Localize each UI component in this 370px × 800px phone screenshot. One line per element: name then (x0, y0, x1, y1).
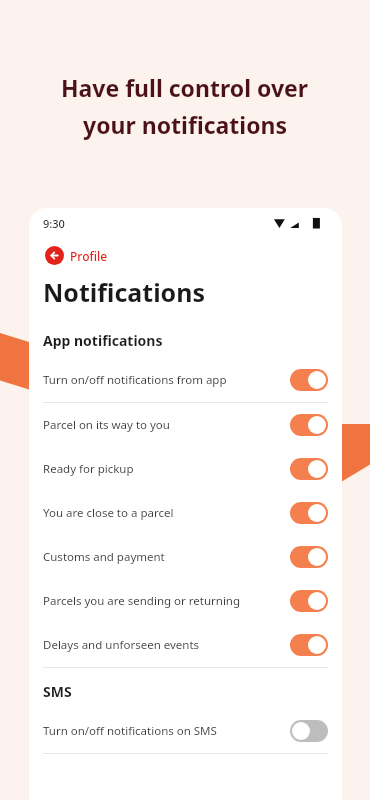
button[interactable]: Delays and unforseen events (29, 623, 342, 667)
staticText: SMS (43, 682, 72, 701)
button[interactable]: On (290, 634, 328, 656)
staticText: Turn on/off notifications on SMS (43, 723, 217, 739)
button[interactable]: Customs and payment (29, 535, 342, 579)
button[interactable]: Parcel on its way to you (29, 403, 342, 447)
button[interactable]: On (290, 502, 328, 524)
staticText: Profile (70, 248, 108, 264)
staticText: You are close to a parcel (43, 505, 174, 521)
button[interactable]: On (290, 369, 328, 391)
staticText: Turn on/off notifications from app (43, 372, 227, 388)
button[interactable]: Turn on/off notifications from app (29, 358, 342, 402)
staticText: Customs and payment (43, 549, 165, 565)
staticText: 9:30 (43, 216, 65, 231)
button[interactable]: On (290, 590, 328, 612)
staticText: Notifications (43, 275, 206, 309)
button[interactable]: Ready for pickup (29, 447, 342, 491)
button[interactable]: On (290, 414, 328, 436)
staticText: Parcels you are sending or returning (43, 593, 241, 609)
button[interactable]: Back (43, 244, 110, 267)
button[interactable]: Parcels you are sending or returning (29, 579, 342, 623)
staticText: Delays and unforseen events (43, 637, 200, 653)
staticText: App notifications (43, 331, 163, 350)
button[interactable]: On (290, 458, 328, 480)
staticText: Have full control over (61, 72, 309, 103)
staticText: Ready for pickup (43, 461, 134, 477)
button[interactable]: On (290, 546, 328, 568)
button[interactable]: Turn on/off notifications on SMS (29, 709, 342, 753)
button[interactable]: You are close to a parcel (29, 491, 342, 535)
button[interactable]: Off (290, 720, 328, 742)
other: Back (45, 246, 64, 265)
staticText: Parcel on its way to you (43, 417, 170, 433)
staticText: your notifications (83, 109, 288, 140)
